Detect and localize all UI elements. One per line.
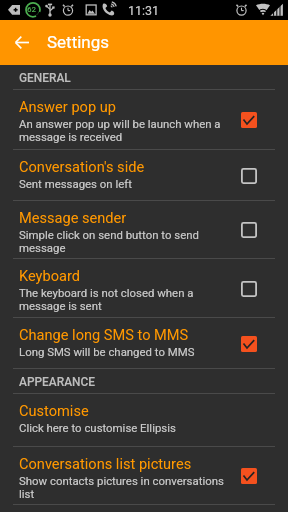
staticText: Keyboard: [19, 268, 81, 284]
button[interactable]: Back: [10, 30, 35, 55]
staticText: Click here to customise Ellipsis: [19, 422, 176, 435]
button[interactable]: Message sender: [0, 201, 288, 259]
staticText: Simple click on send button to send mess…: [19, 229, 232, 255]
staticText: An answer pop up will be launch when a m…: [19, 118, 232, 144]
staticText: Show contacts pictures in conversations …: [19, 475, 232, 501]
staticText: Message sender: [19, 210, 127, 226]
staticText: Sent messages on left: [19, 178, 132, 191]
staticText: 11:31: [128, 3, 160, 18]
staticText: Conversations list pictures: [19, 456, 192, 472]
button[interactable]: Change long SMS to MMS: [0, 318, 288, 369]
staticText: The keyboard is not closed when a messag…: [19, 287, 232, 313]
staticText: 62: [27, 5, 37, 14]
button[interactable]: Conversation's side: [0, 150, 288, 201]
staticText: Long SMS will be changed to MMS: [19, 346, 195, 359]
button[interactable]: Customise: [0, 394, 288, 447]
button[interactable]: Keyboard: [0, 259, 288, 318]
button[interactable]: Answer pop up: [0, 90, 288, 150]
staticText: Answer pop up: [19, 99, 116, 115]
staticText: Settings: [47, 32, 110, 52]
staticText: APPEARANCE: [19, 375, 95, 389]
button[interactable]: Conversations list pictures: [0, 447, 288, 505]
staticText: GENERAL: [19, 71, 71, 85]
staticText: Conversation's side: [19, 159, 145, 175]
staticText: Customise: [19, 403, 89, 419]
staticText: Change long SMS to MMS: [19, 327, 189, 343]
